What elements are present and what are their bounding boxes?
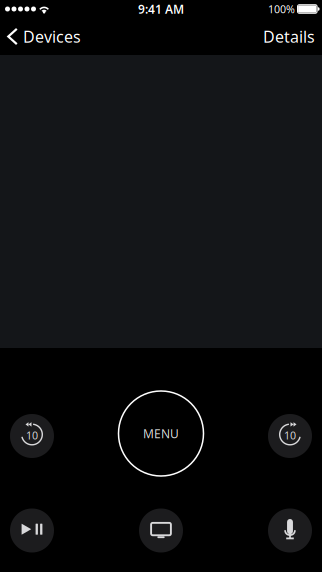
button[interactable]: Play or pause bbox=[10, 508, 54, 552]
button[interactable]: Skip back 10 seconds bbox=[10, 414, 54, 458]
button[interactable]: Devices bbox=[0, 18, 91, 55]
button[interactable]: MENU bbox=[118, 391, 203, 476]
button[interactable]: Skip forward 10 seconds bbox=[268, 414, 312, 458]
staticText: 100% bbox=[268, 2, 295, 16]
staticText: MENU bbox=[143, 425, 179, 441]
button[interactable]: Details bbox=[253, 18, 322, 55]
staticText: 10 bbox=[26, 428, 38, 442]
staticText: 9:41 AM bbox=[138, 1, 184, 17]
staticText: Devices bbox=[23, 26, 81, 47]
staticText: Details bbox=[263, 26, 315, 47]
staticText: 10 bbox=[284, 428, 296, 442]
button[interactable]: Siri bbox=[268, 508, 312, 552]
button[interactable]: Apple TV bbox=[139, 508, 183, 552]
